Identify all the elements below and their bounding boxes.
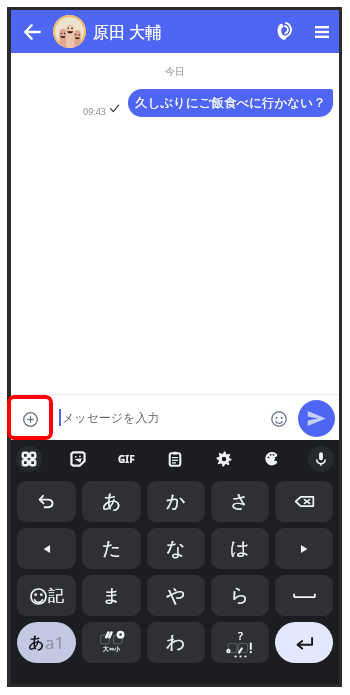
staticText: GIF xyxy=(118,452,135,466)
staticText: 大⇔小 xyxy=(103,645,121,653)
button[interactable]: right xyxy=(275,528,333,569)
button[interactable]: mode xyxy=(17,622,76,663)
staticText: ? xyxy=(238,628,243,643)
staticText: た xyxy=(102,537,122,561)
staticText: 原田 大輔 xyxy=(93,21,162,43)
button[interactable]: undo xyxy=(17,481,76,522)
staticText: か xyxy=(166,490,186,514)
button[interactable]: さ xyxy=(211,481,269,522)
button[interactable]: あ xyxy=(82,481,141,522)
button[interactable]: わ xyxy=(147,622,205,663)
button[interactable]: GIF xyxy=(113,446,139,472)
button[interactable]: 久しぶりにご飯食べに行かない？ xyxy=(128,89,333,117)
button[interactable]: Voice input xyxy=(308,446,334,472)
staticText: 記 xyxy=(48,586,64,606)
staticText: さ xyxy=(230,490,250,514)
staticText: a1 xyxy=(45,631,65,654)
button[interactable]: Profile photo xyxy=(53,15,86,48)
staticText: わ xyxy=(166,631,186,655)
button[interactable]: Add attachment xyxy=(14,402,46,434)
button[interactable]: か xyxy=(147,481,205,522)
button[interactable]: ら xyxy=(211,575,269,616)
button[interactable]: Send xyxy=(298,400,335,437)
staticText: ま xyxy=(102,584,122,608)
button[interactable]: Settings xyxy=(211,446,237,472)
button[interactable]: Stickers xyxy=(65,446,91,472)
staticText: は xyxy=(230,537,250,561)
button[interactable]: enter xyxy=(275,622,333,663)
staticText: 09:43 xyxy=(83,105,107,117)
button[interactable]: た xyxy=(82,528,141,569)
button[interactable]: punct xyxy=(211,622,269,663)
staticText: ら xyxy=(230,584,250,608)
staticText: あ xyxy=(102,490,122,514)
button[interactable]: del xyxy=(275,481,333,522)
button[interactable]: ま xyxy=(82,575,141,616)
button[interactable]: は xyxy=(211,528,269,569)
button[interactable]: Clipboard xyxy=(162,446,188,472)
staticText: メッセージを入力 xyxy=(62,410,160,425)
button[interactable]: Call xyxy=(268,10,302,53)
button[interactable]: space xyxy=(275,575,333,616)
button[interactable]: Menu xyxy=(305,10,339,53)
staticText: な xyxy=(166,537,186,561)
button[interactable]: Themes xyxy=(259,446,285,472)
staticText: や xyxy=(166,584,186,608)
button[interactable]: emoji xyxy=(17,575,76,616)
button[interactable]: Emoji xyxy=(265,404,293,432)
button[interactable]: Apps xyxy=(16,446,42,472)
button[interactable]: な xyxy=(147,528,205,569)
staticText: 今日 xyxy=(11,65,339,78)
staticText: あ xyxy=(28,633,45,653)
staticText: 久しぶりにご飯食べに行かない？ xyxy=(135,95,326,111)
button[interactable]: daku xyxy=(82,622,141,663)
button[interactable]: Back xyxy=(11,10,51,53)
button[interactable]: や xyxy=(147,575,205,616)
button[interactable]: left xyxy=(17,528,76,569)
